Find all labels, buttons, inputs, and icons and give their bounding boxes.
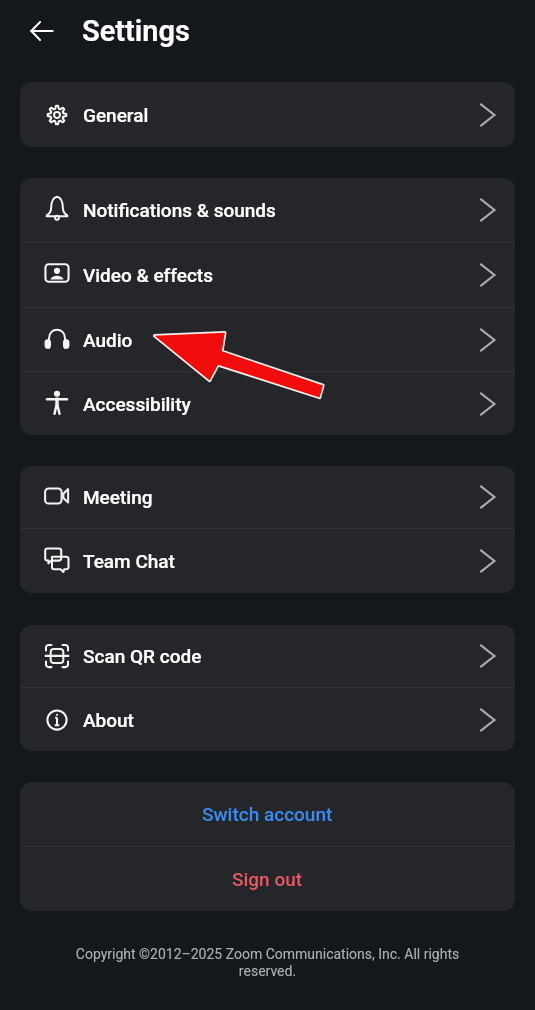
button[interactable]: About: [20, 688, 515, 751]
staticText: Audio: [83, 329, 133, 351]
staticText: Sign out: [232, 868, 303, 890]
staticText: Scan QR code: [83, 645, 202, 667]
staticText: Video & effects: [83, 264, 213, 286]
button[interactable]: General: [20, 82, 515, 147]
staticText: Switch account: [202, 803, 333, 825]
staticText: Accessibility: [83, 393, 191, 415]
staticText: Meeting: [83, 486, 153, 508]
button[interactable]: Team Chat: [20, 529, 515, 593]
staticText: Team Chat: [83, 550, 175, 572]
button[interactable]: Audio: [20, 308, 515, 371]
button[interactable]: Notifications & sounds: [20, 178, 515, 242]
staticText: Copyright ©2012–2025 Zoom Communications…: [62, 946, 473, 980]
staticText: Settings: [82, 14, 190, 48]
button[interactable]: Back: [19, 8, 65, 54]
button[interactable]: Video & effects: [20, 243, 515, 307]
button[interactable]: Meeting: [20, 466, 515, 528]
button[interactable]: Switch account: [20, 782, 515, 846]
button[interactable]: Accessibility: [20, 372, 515, 435]
button[interactable]: Sign out: [20, 847, 515, 911]
staticText: General: [83, 104, 149, 126]
button[interactable]: Scan QR code: [20, 625, 515, 687]
staticText: About: [83, 709, 134, 731]
staticText: Notifications & sounds: [83, 199, 276, 221]
